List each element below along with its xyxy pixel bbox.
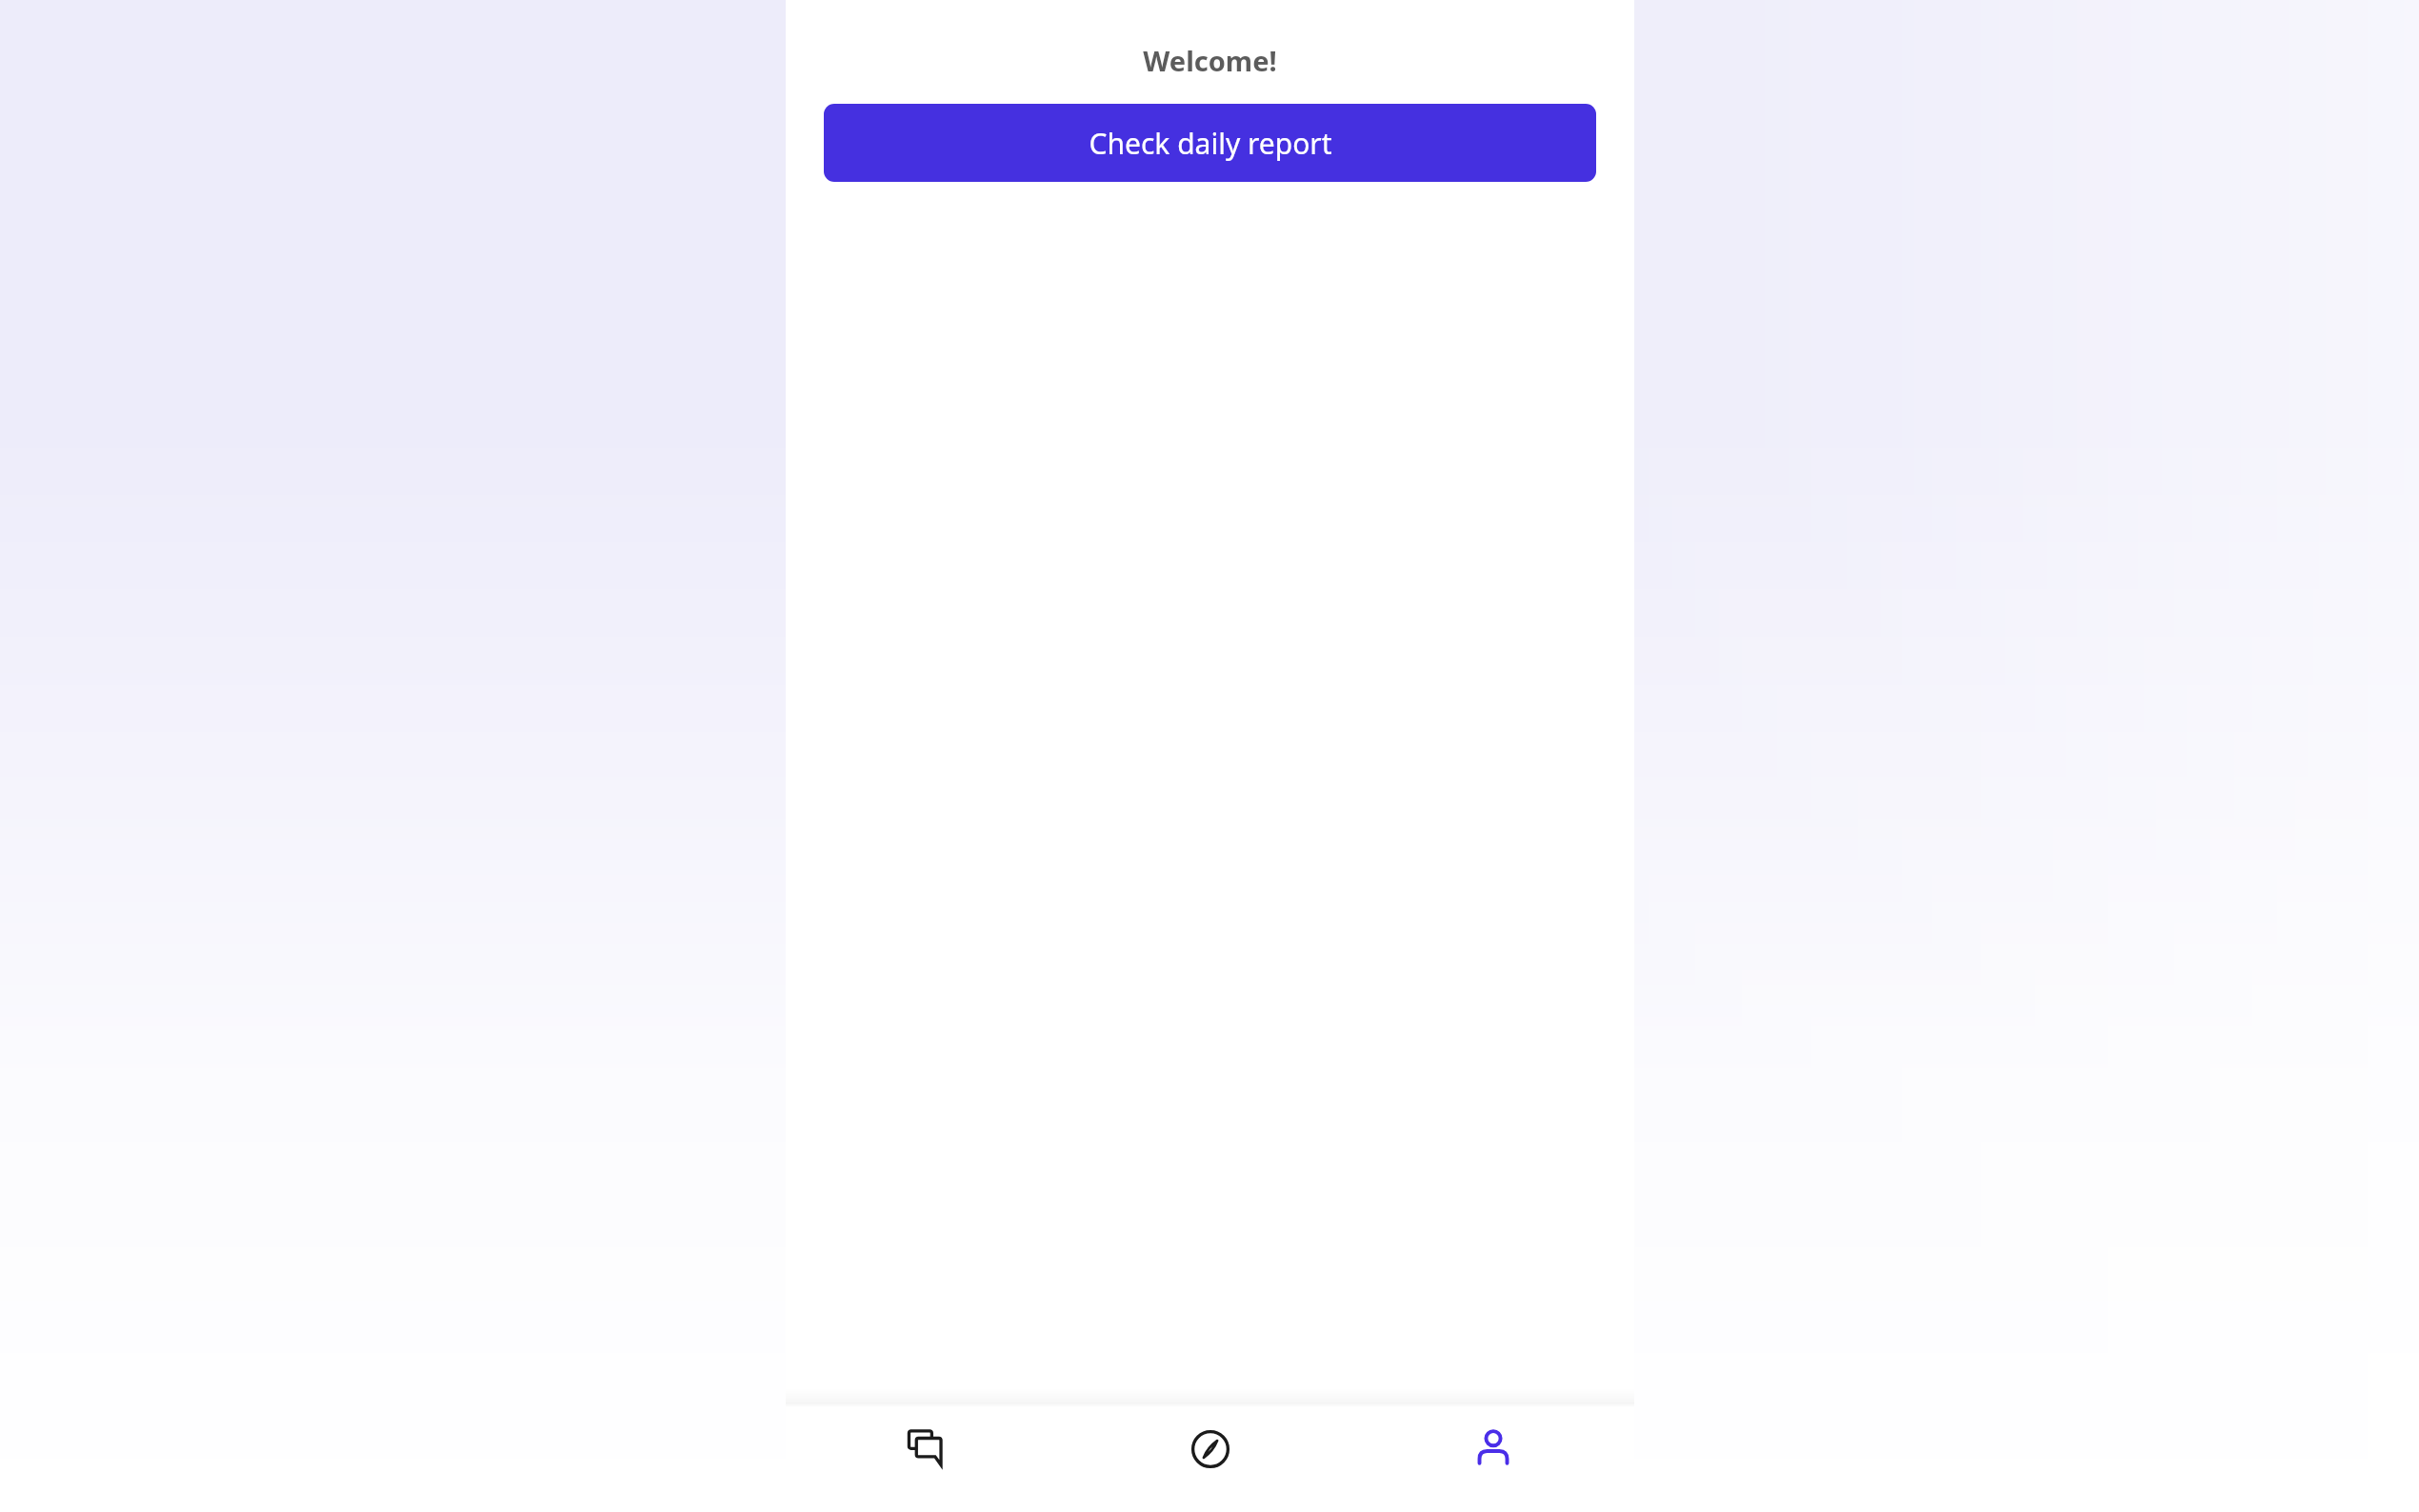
staticText: Check daily report — [1089, 124, 1332, 163]
button[interactable]: Chats — [786, 1407, 1069, 1512]
staticText: Welcome! — [786, 42, 1634, 79]
button[interactable]: Explore — [1069, 1407, 1351, 1512]
button[interactable]: Profile — [1351, 1407, 1634, 1512]
button[interactable]: Check daily report — [824, 104, 1596, 182]
